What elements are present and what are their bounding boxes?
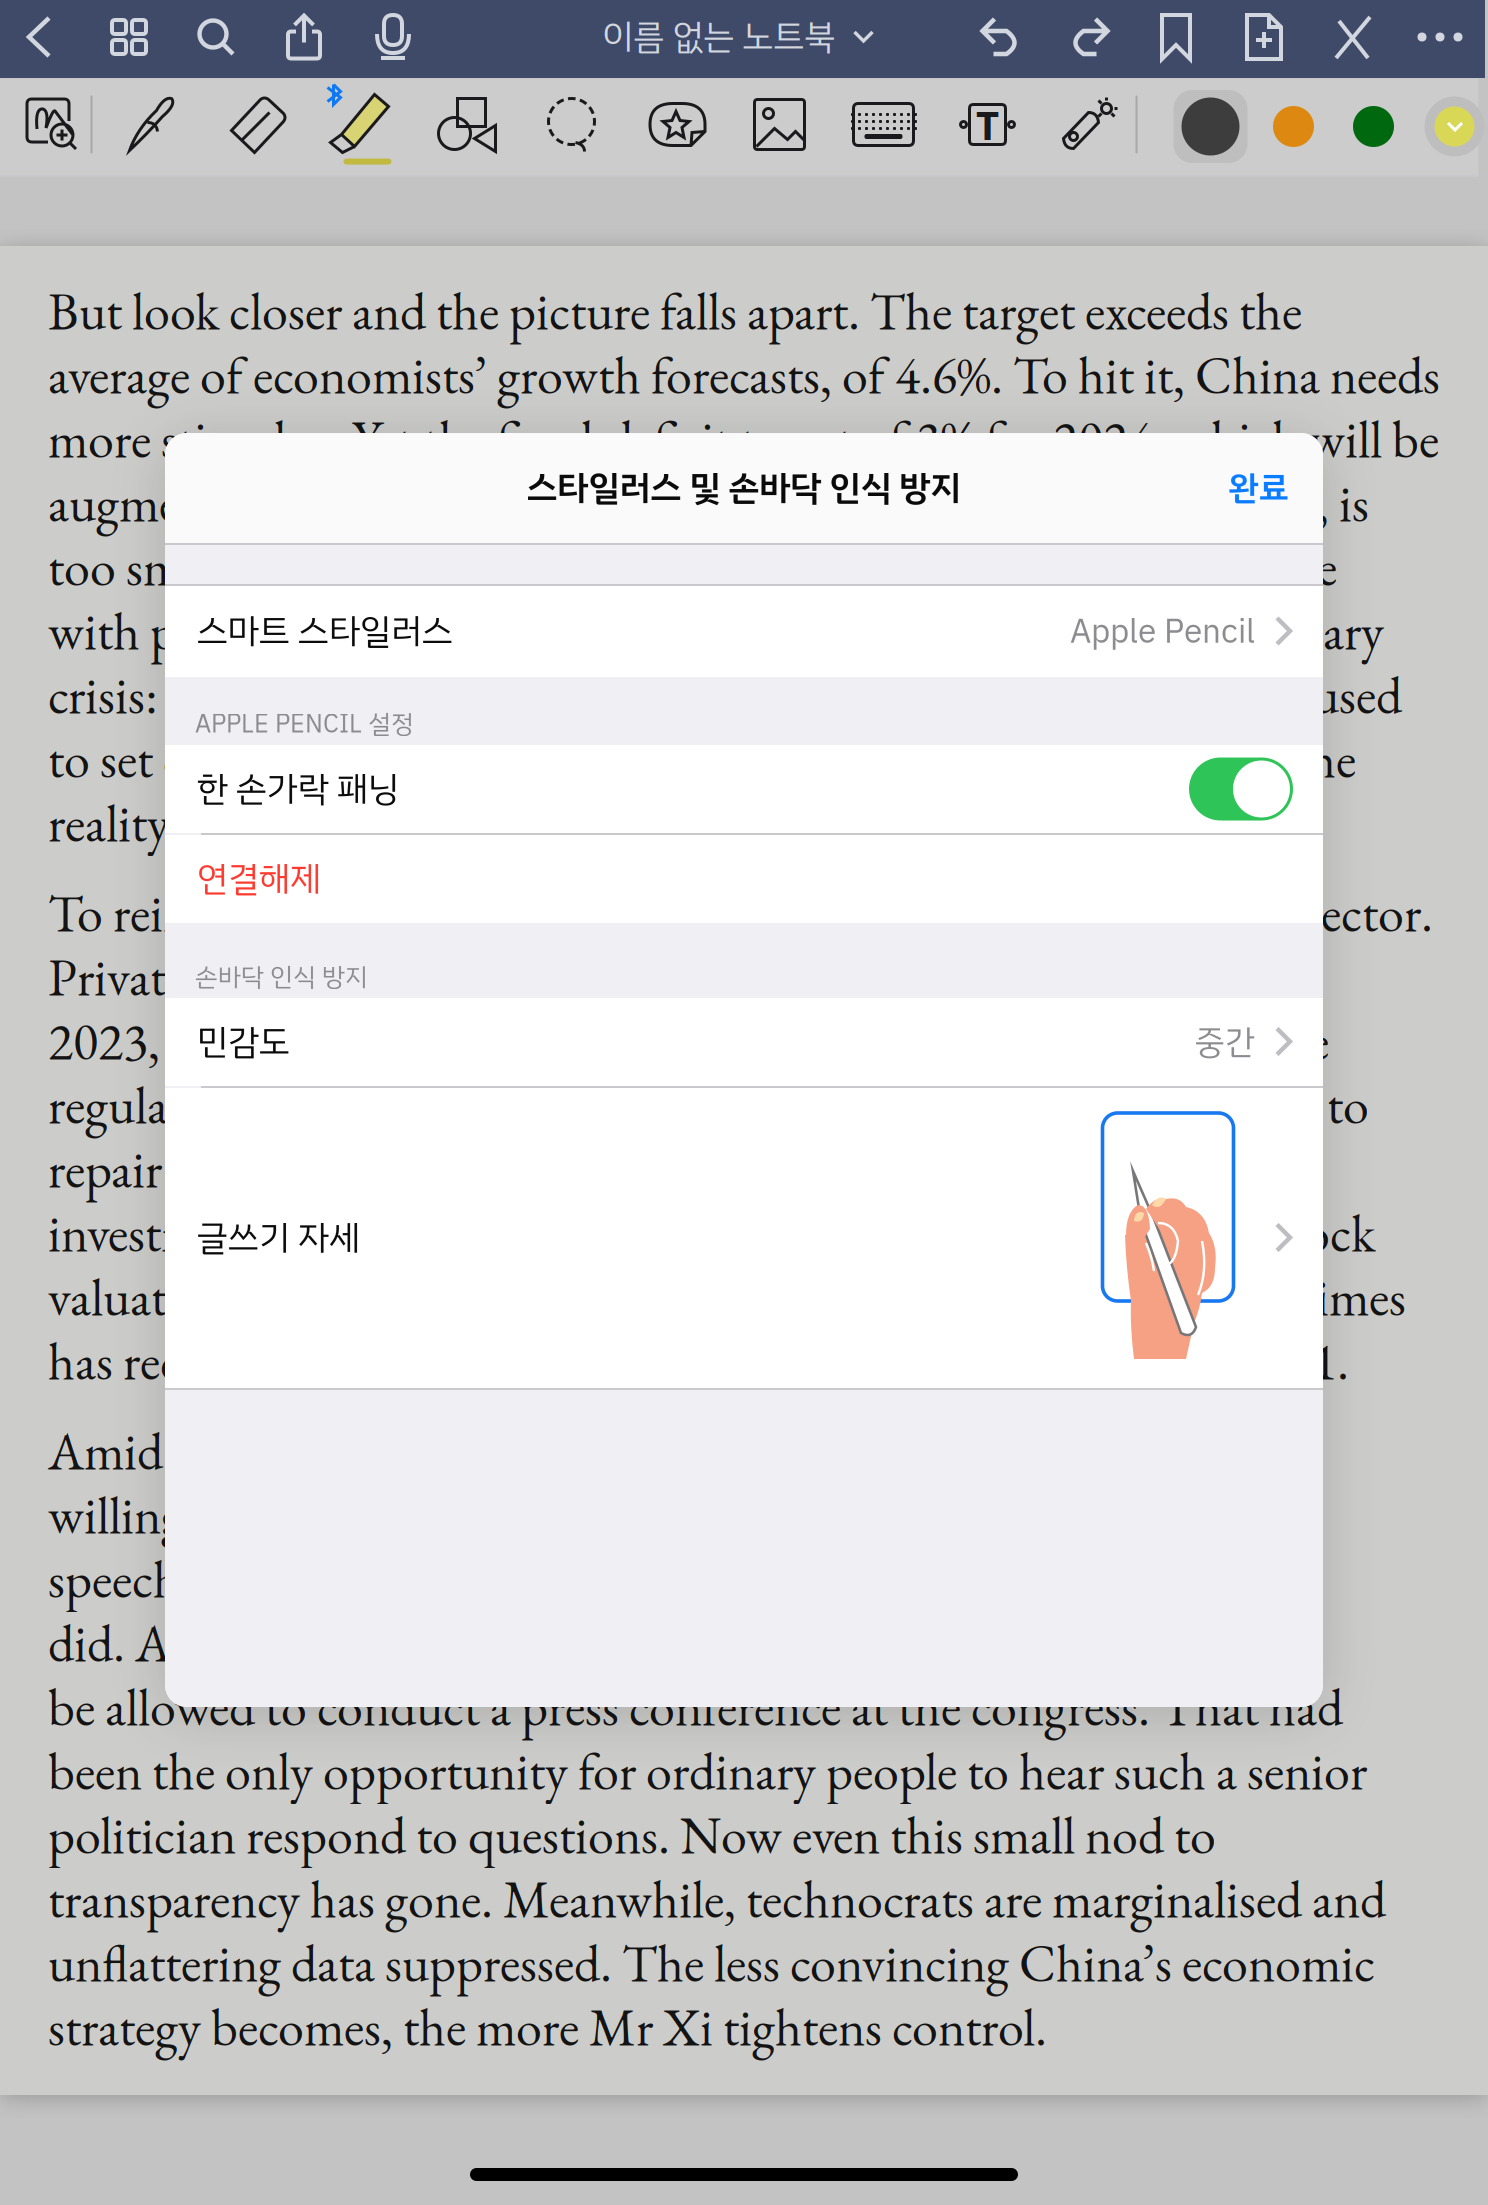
button[interactable]: Undo xyxy=(979,17,1024,57)
staticText: 한 손가락 패닝 xyxy=(197,763,399,815)
button[interactable]: Orange ink xyxy=(1273,106,1314,147)
staticText: Private investment fell by 0.4% in the y… xyxy=(48,943,1302,1011)
button[interactable]: Stickers xyxy=(647,98,708,150)
staticText: be allowed to conduct a press conference… xyxy=(48,1673,1343,1741)
staticText: regulatory assault has formally ended bu… xyxy=(48,1071,1369,1139)
button[interactable]: Hide markup toolbar xyxy=(1334,13,1372,61)
staticText: 완료 xyxy=(1229,463,1289,513)
staticText: Apple Pencil xyxy=(1070,606,1255,656)
button[interactable]: Eraser xyxy=(228,94,286,154)
button[interactable]: Bookmark xyxy=(1160,13,1192,61)
button[interactable]: Insert space xyxy=(24,97,79,152)
staticText: been the only opportunity for ordinary p… xyxy=(48,1737,1367,1805)
staticText: 스타일러스 및 손바닥 인식 방지 xyxy=(526,462,961,514)
button[interactable]: More colours xyxy=(1424,96,1484,156)
button[interactable]: Share xyxy=(286,13,322,60)
button[interactable]: 글쓰기 자세 xyxy=(165,1088,1323,1388)
staticText: reality. xyxy=(48,789,178,857)
button[interactable]: Selection xyxy=(545,95,599,153)
button[interactable]: 완료 xyxy=(1229,433,1323,543)
staticText: did. And for the first time in decades t… xyxy=(48,1609,1296,1677)
staticText: repair the damage. Policymakers crave mo… xyxy=(48,1135,1324,1203)
button[interactable]: Laser pointer xyxy=(1055,96,1119,152)
staticText: 스마트 스타일러스 xyxy=(197,605,453,657)
staticText: speech Mr Li did not mention reform even… xyxy=(48,1545,1321,1613)
button[interactable]: Shapes xyxy=(435,95,497,153)
button[interactable]: Highlighter xyxy=(325,82,395,166)
staticText: with property woes, local-government deb… xyxy=(48,597,1384,665)
button[interactable]: Keyboard xyxy=(851,100,915,148)
staticText: more stimulus. Yet the fiscal-deficit ta… xyxy=(48,405,1439,473)
staticText: 중간 xyxy=(1195,1017,1255,1067)
staticText: 민감도 xyxy=(197,1016,290,1068)
staticText: politician respond to questions. Now eve… xyxy=(48,1801,1216,1869)
button[interactable]: Thumbnails xyxy=(111,19,147,55)
staticText: average of economists’ growth forecasts,… xyxy=(48,341,1440,409)
staticText: 글쓰기 자세 xyxy=(197,1212,360,1264)
staticText: But look closer and the picture falls ap… xyxy=(48,277,1302,345)
staticText: Amid this gloom, the Communist Party loo… xyxy=(48,1417,1112,1485)
button[interactable]: Record audio xyxy=(375,13,411,61)
button[interactable]: Redo xyxy=(1065,17,1110,57)
staticText: has recovered only very slowly indeed si… xyxy=(48,1327,1349,1395)
staticText: valuation of Chinese tech firms listed i… xyxy=(48,1263,1406,1331)
staticText: transparency has gone. Meanwhile, techno… xyxy=(48,1865,1386,1933)
button[interactable]: Search xyxy=(197,18,235,56)
staticText: investment in advanced high-tech manufac… xyxy=(48,1199,1375,1267)
staticText: 이름 없는 노트북 xyxy=(602,11,835,63)
button[interactable]: 스마트 스타일러스 xyxy=(165,586,1323,677)
button[interactable]: Back xyxy=(25,15,53,59)
staticText: T xyxy=(976,98,999,151)
staticText: crisis: the phrase “new productive force… xyxy=(48,661,1402,729)
button[interactable]: Text box xyxy=(958,99,1016,149)
button[interactable]: 이름 없는 노트북 xyxy=(528,0,948,78)
button[interactable]: More xyxy=(1417,32,1462,41)
staticText: 손바닥 인식 방지 xyxy=(195,958,368,996)
staticText: to set out a vision of growth that is qu… xyxy=(48,725,1356,793)
staticText: unflattering data suppressed. The less c… xyxy=(48,1929,1375,1997)
button[interactable]: New page xyxy=(1245,13,1283,61)
button[interactable]: 민감도 xyxy=(165,998,1323,1086)
staticText: augmented by off-budget borrowing and ot… xyxy=(48,469,1369,537)
staticText: 연결해제 xyxy=(197,853,321,905)
button[interactable]: Black ink, selected xyxy=(1173,90,1247,163)
staticText: too small. Moreover, the government is s… xyxy=(48,533,1337,601)
button[interactable]: 한 손가락 패닝 xyxy=(165,745,1323,833)
staticText: 2023, long before the crackdown on techn… xyxy=(48,1007,1329,1075)
staticText: APPLE PENCIL 설정 xyxy=(195,705,414,743)
staticText: To reinvigorate growth China must revive… xyxy=(48,879,1433,947)
button[interactable]: Pen xyxy=(126,94,176,154)
button[interactable]: 연결해제 xyxy=(165,835,1323,923)
staticText: willing to engage with the outside world… xyxy=(48,1481,1071,1549)
staticText: strategy becomes, the more Mr Xi tighten… xyxy=(48,1993,1047,2061)
button[interactable]: Insert image xyxy=(751,96,807,152)
button[interactable]: Green ink xyxy=(1353,106,1394,147)
